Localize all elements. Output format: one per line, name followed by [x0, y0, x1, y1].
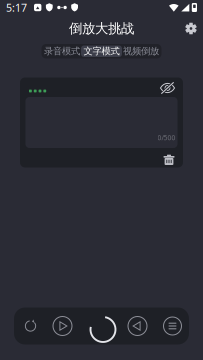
staticText: 录音模式	[44, 45, 80, 57]
button[interactable]: Clear text	[159, 149, 179, 167]
button[interactable]: Settings	[179, 16, 203, 40]
staticText: 文字模式	[83, 45, 119, 57]
button[interactable]: 录音模式	[43, 45, 81, 57]
staticText: 倒放大挑战	[69, 20, 134, 37]
button[interactable]: Hide text	[158, 80, 177, 95]
button[interactable]: Play reversed	[126, 311, 149, 341]
button[interactable]: History	[161, 311, 184, 341]
button[interactable]: Reset	[19, 311, 42, 341]
button[interactable]: Record	[86, 312, 120, 346]
staticText: 视频倒放	[123, 45, 159, 57]
staticText: 5:17	[6, 0, 27, 15]
button[interactable]: Play	[51, 311, 74, 341]
staticText: 0/500	[157, 133, 175, 142]
button[interactable]: 视频倒放	[122, 45, 160, 57]
button[interactable]: 文字模式	[81, 45, 122, 57]
